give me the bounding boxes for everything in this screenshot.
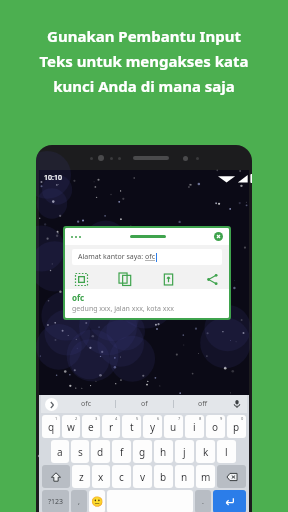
button[interactable]: More suggestions bbox=[45, 398, 58, 411]
staticText: x bbox=[98, 470, 104, 484]
button[interactable]: x bbox=[92, 465, 110, 488]
staticText: n bbox=[181, 470, 188, 484]
staticText: a bbox=[57, 445, 63, 459]
button[interactable]: n bbox=[175, 465, 194, 488]
button[interactable]: c bbox=[112, 465, 131, 488]
button[interactable]: , bbox=[71, 490, 87, 512]
staticText: 1 bbox=[55, 416, 58, 421]
button[interactable]: Select all bbox=[75, 273, 88, 286]
staticText: 0 bbox=[241, 416, 244, 421]
staticText: r bbox=[109, 420, 114, 434]
staticText: ofc bbox=[72, 292, 85, 303]
staticText: i bbox=[193, 420, 196, 434]
staticText: f bbox=[120, 445, 124, 459]
button[interactable]: Backspace bbox=[217, 465, 246, 488]
button[interactable]: v bbox=[133, 465, 152, 488]
staticText: off bbox=[198, 399, 208, 409]
button[interactable]: Close bbox=[214, 232, 223, 241]
staticText: m bbox=[201, 470, 211, 484]
staticText: g bbox=[139, 445, 146, 459]
staticText: b bbox=[160, 470, 167, 484]
button[interactable]: m bbox=[196, 465, 215, 488]
staticText: 5 bbox=[136, 416, 139, 421]
button[interactable]: g bbox=[133, 440, 152, 463]
staticText: l bbox=[225, 445, 228, 459]
button[interactable]: Voice input bbox=[231, 398, 243, 410]
button[interactable]: 3 bbox=[82, 415, 100, 438]
staticText: 🙂 bbox=[91, 496, 104, 508]
staticText: j bbox=[183, 445, 186, 459]
button[interactable]: h bbox=[154, 440, 173, 463]
staticText: 4 bbox=[115, 416, 118, 421]
button[interactable]: 1 bbox=[42, 415, 60, 438]
staticText: v bbox=[140, 470, 146, 484]
button[interactable]: off bbox=[174, 395, 231, 413]
staticText: s bbox=[78, 445, 83, 459]
staticText: w bbox=[67, 420, 75, 434]
button[interactable]: ?123 bbox=[42, 490, 69, 512]
button[interactable]: z bbox=[72, 465, 90, 488]
staticText: Alamat kantor saya: bbox=[78, 252, 145, 262]
button[interactable]: l bbox=[217, 440, 236, 463]
staticText: of bbox=[141, 399, 148, 409]
button[interactable]: 5 bbox=[122, 415, 141, 438]
button[interactable]: Enter bbox=[213, 490, 246, 512]
staticText: ofc bbox=[145, 252, 156, 262]
button[interactable]: 9 bbox=[206, 415, 225, 438]
button[interactable]: . bbox=[195, 490, 211, 512]
staticText: t bbox=[130, 420, 134, 434]
staticText: z bbox=[79, 470, 84, 484]
button[interactable]: Share bbox=[206, 273, 219, 286]
staticText: 10:10 bbox=[44, 173, 62, 183]
button[interactable]: 🙂 bbox=[89, 490, 105, 512]
staticText: 9 bbox=[220, 416, 223, 421]
button[interactable]: 8 bbox=[185, 415, 204, 438]
button[interactable]: b bbox=[154, 465, 173, 488]
button[interactable]: Shift bbox=[42, 465, 70, 488]
staticText: y bbox=[150, 420, 156, 434]
button[interactable]: 4 bbox=[102, 415, 120, 438]
button[interactable]: ofc bbox=[72, 292, 229, 314]
staticText: Gunakan Pembantu Input Teks untuk mengak… bbox=[39, 26, 249, 96]
staticText: h bbox=[160, 445, 167, 459]
button[interactable]: f bbox=[112, 440, 131, 463]
staticText: 8 bbox=[199, 416, 202, 421]
button[interactable]: Alamat kantor saya: bbox=[78, 249, 216, 265]
button[interactable]: 0 bbox=[227, 415, 246, 438]
staticText: 3 bbox=[95, 416, 98, 421]
staticText: u bbox=[170, 420, 177, 434]
button[interactable]: k bbox=[196, 440, 215, 463]
staticText: o bbox=[212, 420, 219, 434]
button[interactable]: d bbox=[91, 440, 110, 463]
staticText: , bbox=[78, 497, 80, 507]
staticText: k bbox=[203, 445, 209, 459]
button[interactable]: ofc bbox=[58, 395, 115, 413]
staticText: ?123 bbox=[48, 497, 64, 507]
staticText: 6 bbox=[157, 416, 160, 421]
staticText: c bbox=[119, 470, 124, 484]
button[interactable]: 7 bbox=[164, 415, 183, 438]
staticText: p bbox=[233, 420, 240, 434]
button[interactable]: Export bbox=[162, 273, 175, 286]
staticText: ofc bbox=[81, 399, 92, 409]
staticText: gedung xxx, jalan xxx, kota xxx bbox=[72, 304, 174, 314]
staticText: 2 bbox=[75, 416, 78, 421]
button[interactable]: a bbox=[51, 440, 69, 463]
staticText: . bbox=[202, 497, 204, 507]
button[interactable]: More options bbox=[71, 236, 83, 238]
staticText: q bbox=[48, 420, 55, 434]
staticText: e bbox=[88, 420, 94, 434]
staticText: 7 bbox=[178, 416, 181, 421]
button[interactable]: Copy bbox=[119, 273, 132, 286]
button[interactable]: 6 bbox=[143, 415, 162, 438]
button[interactable]: of bbox=[116, 395, 173, 413]
button[interactable]: 2 bbox=[62, 415, 80, 438]
staticText: d bbox=[97, 445, 104, 459]
button[interactable]: s bbox=[71, 440, 89, 463]
button[interactable]: j bbox=[175, 440, 194, 463]
